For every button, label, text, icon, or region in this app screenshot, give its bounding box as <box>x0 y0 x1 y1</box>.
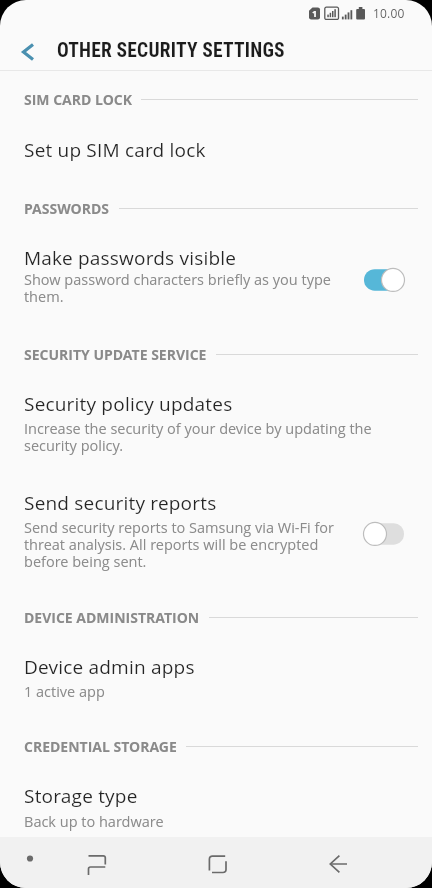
button[interactable] <box>75 844 119 882</box>
button[interactable] <box>195 844 239 882</box>
staticText: DEVICE ADMINISTRATION <box>24 608 200 627</box>
button[interactable]: Set up SIM card lock <box>0 120 432 186</box>
staticText: SIM CARD LOCK <box>24 90 132 109</box>
staticText: SECURITY UPDATE SERVICE <box>24 345 207 364</box>
staticText: Set up SIM card lock <box>24 137 206 163</box>
staticText: Show password characters briefly as you … <box>24 270 331 307</box>
button[interactable]: Device admin apps <box>0 644 432 712</box>
staticText: Increase the security of your device by … <box>24 419 372 456</box>
button[interactable] <box>8 32 50 70</box>
button[interactable]: Security policy updates <box>0 378 432 472</box>
button[interactable] <box>363 268 405 292</box>
staticText: Send security reports <box>24 490 217 516</box>
staticText: 1 active app <box>24 682 105 702</box>
button[interactable] <box>363 522 405 546</box>
staticText: Storage type <box>24 783 138 809</box>
staticText: 1 <box>312 7 318 19</box>
button[interactable]: Storage type <box>0 770 432 837</box>
staticText: CREDENTIAL STORAGE <box>24 737 177 756</box>
staticText: Make passwords visible <box>24 245 237 271</box>
button[interactable] <box>315 844 359 882</box>
staticText: OTHER SECURITY SETTINGS <box>57 39 285 62</box>
button[interactable]: Make passwords visible <box>0 228 432 324</box>
staticText: Device admin apps <box>24 654 195 680</box>
button[interactable]: Send security reports <box>0 472 432 588</box>
staticText: Security policy updates <box>24 391 233 417</box>
staticText: 10.00 <box>373 5 405 21</box>
staticText: PASSWORDS <box>24 199 110 218</box>
staticText: Send security reports to Samsung via Wi-… <box>24 518 335 572</box>
staticText: Back up to hardware <box>24 812 164 832</box>
